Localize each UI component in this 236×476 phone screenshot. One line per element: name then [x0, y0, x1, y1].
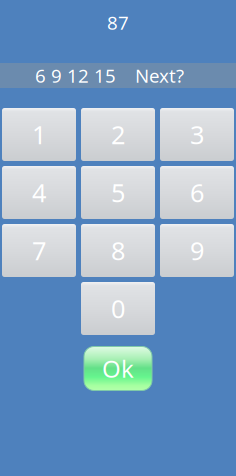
staticText: 5: [111, 176, 125, 209]
button[interactable]: 6: [160, 166, 234, 219]
button[interactable]: 1: [2, 108, 76, 161]
staticText: 6 9 12 15: [35, 63, 116, 88]
button[interactable]: 9: [160, 224, 234, 277]
button[interactable]: 0: [81, 282, 155, 335]
staticText: 6: [190, 176, 204, 209]
button[interactable]: 8: [81, 224, 155, 277]
button[interactable]: Ok: [83, 346, 152, 391]
button[interactable]: 4: [2, 166, 76, 219]
staticText: 7: [32, 234, 46, 267]
staticText: 87: [107, 10, 129, 35]
button[interactable]: 3: [160, 108, 234, 161]
staticText: 2: [111, 118, 125, 151]
staticText: 9: [190, 234, 204, 267]
staticText: 0: [111, 292, 125, 325]
button[interactable]: 5: [81, 166, 155, 219]
staticText: 8: [111, 234, 125, 267]
staticText: Ok: [102, 353, 134, 384]
staticText: 4: [32, 176, 46, 209]
staticText: Next?: [135, 63, 184, 88]
staticText: 1: [32, 118, 46, 151]
button[interactable]: 2: [81, 108, 155, 161]
button[interactable]: 7: [2, 224, 76, 277]
staticText: 3: [190, 118, 204, 151]
